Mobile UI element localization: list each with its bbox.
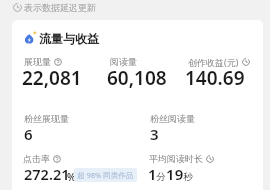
other: Help — [54, 58, 62, 66]
staticText: 平均阅读时长 — [149, 153, 203, 164]
staticText: 流量与收益 — [39, 31, 99, 46]
button[interactable]: 阅读量 — [110, 56, 137, 67]
button[interactable]: Data updates with delay — [13, 2, 96, 13]
staticText: 140.69 — [185, 65, 245, 91]
button[interactable]: 展现量 — [24, 56, 62, 67]
other: Data updates with delay — [206, 155, 214, 163]
other: Data updates with delay — [242, 58, 250, 66]
staticText: 超 98% 同类作品 — [77, 170, 134, 180]
staticText: 60,108 — [107, 65, 167, 91]
staticText: 创作收益(元) — [188, 56, 239, 68]
button[interactable]: 平均阅读时长 — [149, 153, 214, 164]
button[interactable]: 创作收益(元) — [188, 56, 250, 68]
staticText: 粉丝展现量 — [24, 113, 69, 124]
staticText: 粉丝阅读量 — [150, 113, 195, 124]
staticText: 3 — [150, 124, 159, 144]
staticText: 6 — [24, 124, 33, 144]
staticText: 272.21 — [24, 164, 70, 184]
button[interactable]: 超 98% 同类作品 — [74, 168, 137, 182]
staticText: 1分19秒 — [148, 164, 193, 184]
button[interactable]: Traffic and earnings — [22, 30, 99, 46]
button[interactable]: 点击率 — [23, 153, 61, 164]
button[interactable]: 粉丝展现量 — [24, 113, 69, 124]
staticText: % — [67, 170, 76, 184]
other: Data updates with delay — [13, 3, 22, 12]
other: Help — [53, 155, 61, 163]
staticText: 点击率 — [23, 153, 50, 164]
staticText: 展现量 — [24, 56, 51, 67]
other: Traffic and earnings — [22, 30, 38, 46]
button[interactable]: 粉丝阅读量 — [150, 113, 195, 124]
staticText: 22,081 — [22, 65, 82, 91]
staticText: 表示数据延迟更新 — [24, 2, 96, 13]
staticText: 阅读量 — [110, 56, 137, 67]
